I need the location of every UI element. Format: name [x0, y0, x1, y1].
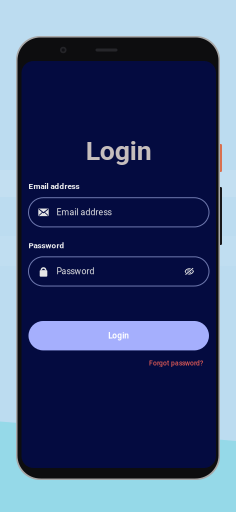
button[interactable]: Password: [28, 257, 209, 286]
button[interactable]: Forgot password?: [149, 359, 203, 367]
staticText: Email address: [56, 207, 111, 217]
button[interactable]: Login: [28, 321, 209, 350]
staticText: Password: [28, 241, 64, 250]
staticText: Login: [86, 135, 152, 166]
button[interactable]: Email address: [28, 198, 209, 227]
staticText: Password: [56, 266, 94, 276]
staticText: Email address: [28, 182, 79, 191]
staticText: Forgot password?: [149, 359, 203, 367]
staticText: Login: [108, 331, 129, 341]
